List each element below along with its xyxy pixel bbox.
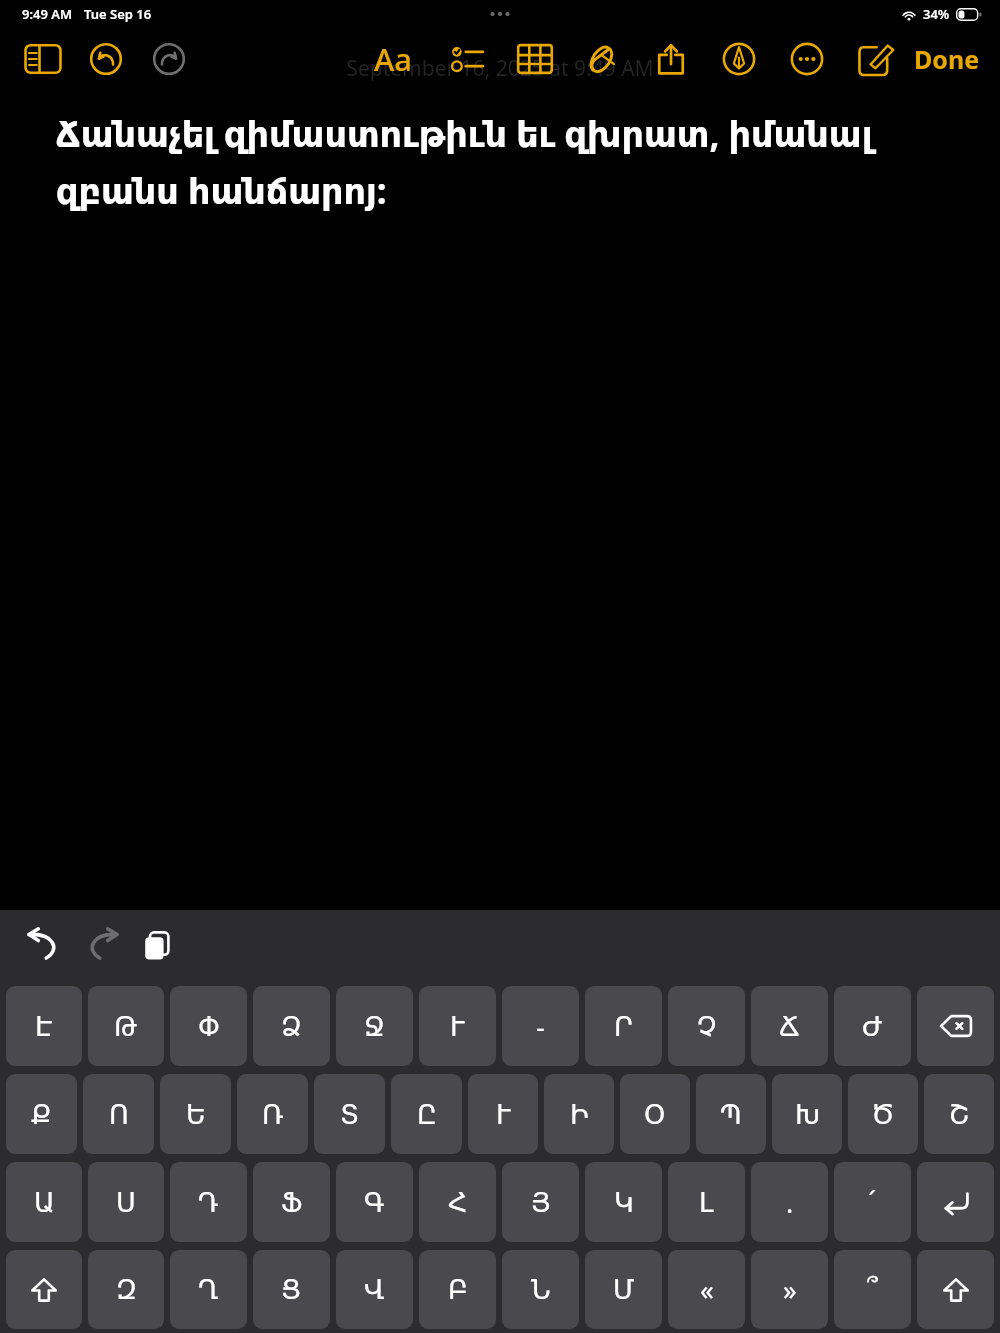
button[interactable]: Դ — [170, 1162, 247, 1242]
staticText: Գ — [364, 1187, 385, 1218]
button[interactable]: Չ — [668, 986, 745, 1066]
button[interactable]: Share — [650, 38, 692, 80]
staticText: 9:49 AM — [22, 5, 73, 23]
staticText: Ս — [116, 1187, 136, 1218]
button[interactable]: Aa — [364, 28, 422, 90]
button[interactable]: Պ — [696, 1074, 766, 1154]
button[interactable]: Ա — [6, 1162, 82, 1242]
button[interactable]: Ի — [544, 1074, 614, 1154]
button[interactable]: Show note list — [24, 40, 62, 78]
staticText: Ո — [109, 1099, 129, 1130]
button[interactable]: Done — [914, 28, 980, 90]
button[interactable]: « — [668, 1250, 745, 1329]
button[interactable]: Undo — [86, 39, 126, 79]
button[interactable]: Յ — [502, 1162, 579, 1242]
button[interactable]: Ռ — [237, 1074, 308, 1154]
button[interactable]: Տ — [314, 1074, 385, 1154]
button[interactable]: Ւ — [468, 1074, 538, 1154]
button[interactable]: Table — [514, 38, 556, 80]
button[interactable]: Հ — [419, 1162, 496, 1242]
staticText: Շ — [949, 1099, 970, 1130]
button[interactable]: Ց — [253, 1250, 330, 1329]
button[interactable]: Ն — [502, 1250, 579, 1329]
staticText: Ճանաչել զիմաստութիւն եւ զխրատ, իմանալ զբ… — [56, 110, 873, 214]
staticText: Ճ — [779, 1011, 800, 1042]
button[interactable]: Է — [6, 986, 82, 1066]
button[interactable]: Ժ — [834, 986, 911, 1066]
button[interactable]: Shift — [917, 1250, 994, 1329]
staticText: Ե — [186, 1099, 206, 1130]
button[interactable]: ՛ — [834, 1162, 911, 1242]
staticText: Ի — [570, 1099, 589, 1130]
staticText: Հ — [448, 1187, 468, 1218]
button[interactable]: More options — [786, 38, 828, 80]
button[interactable]: Ր — [585, 986, 662, 1066]
button[interactable]: Attach — [582, 38, 624, 80]
button[interactable]: New note — [854, 38, 896, 80]
staticText: Օ — [644, 1099, 666, 1130]
button[interactable]: . — [751, 1162, 828, 1242]
button[interactable]: Մ — [585, 1250, 662, 1329]
button[interactable]: - — [502, 986, 579, 1066]
button[interactable]: Undo — [22, 924, 66, 968]
staticText: Մ — [613, 1274, 635, 1305]
staticText: Ն — [531, 1274, 551, 1305]
button[interactable]: Checklist — [446, 38, 488, 80]
button[interactable]: » — [751, 1250, 828, 1329]
staticText: Զ — [116, 1274, 137, 1305]
button[interactable]: Կ — [585, 1162, 662, 1242]
button[interactable]: Ղ — [170, 1250, 247, 1329]
button[interactable]: Զ — [88, 1250, 164, 1329]
staticText: ՛ — [869, 1187, 876, 1218]
staticText: Ֆ — [281, 1187, 303, 1218]
button[interactable]: Ե — [160, 1074, 231, 1154]
staticText: Ժ — [862, 1011, 883, 1042]
staticText: Տ — [340, 1099, 360, 1130]
staticText: Ր — [614, 1011, 633, 1042]
button[interactable]: Redo — [80, 924, 124, 968]
button[interactable]: Redo — [149, 39, 189, 79]
button[interactable]: Ճ — [751, 986, 828, 1066]
button[interactable]: Ս — [88, 1162, 164, 1242]
button[interactable]: Ք — [6, 1074, 77, 1154]
button[interactable]: Backspace — [917, 986, 994, 1066]
staticText: Բ — [448, 1274, 468, 1305]
staticText: Ց — [281, 1274, 302, 1305]
staticText: Ծ — [871, 1099, 895, 1130]
staticText: Խ — [795, 1099, 820, 1130]
staticText: Փ — [198, 1011, 220, 1042]
staticText: Aa — [374, 38, 413, 80]
staticText: Ը — [417, 1099, 437, 1130]
button[interactable]: Շ — [924, 1074, 994, 1154]
button[interactable]: Փ — [170, 986, 247, 1066]
button[interactable]: Խ — [772, 1074, 842, 1154]
staticText: Վ — [364, 1274, 385, 1305]
button[interactable]: Ֆ — [253, 1162, 330, 1242]
button[interactable]: Օ — [620, 1074, 690, 1154]
button[interactable]: Վ — [336, 1250, 413, 1329]
button[interactable]: Ջ — [336, 986, 413, 1066]
staticText: Դ — [198, 1187, 219, 1218]
staticText: Պ — [720, 1099, 742, 1130]
button[interactable]: Markup — [718, 38, 760, 80]
button[interactable]: Լ — [668, 1162, 745, 1242]
button[interactable]: Ձ — [253, 986, 330, 1066]
staticText: . — [786, 1184, 794, 1221]
staticText: Կ — [614, 1187, 634, 1218]
button[interactable]: Թ — [88, 986, 164, 1066]
button[interactable]: Բ — [419, 1250, 496, 1329]
button[interactable]: Ը — [391, 1074, 462, 1154]
staticText: Ա — [34, 1187, 55, 1218]
button[interactable]: Paste — [138, 926, 178, 966]
staticText: Յ — [531, 1187, 551, 1218]
button[interactable]: ՞ — [834, 1250, 911, 1329]
button[interactable]: Ո — [83, 1074, 154, 1154]
staticText: 34% — [923, 5, 950, 23]
staticText: ՞ — [867, 1274, 878, 1305]
button[interactable]: Գ — [336, 1162, 413, 1242]
staticText: Ք — [31, 1099, 52, 1130]
button[interactable]: Ծ — [848, 1074, 918, 1154]
button[interactable]: Shift — [6, 1250, 82, 1329]
button[interactable]: Ւ — [419, 986, 496, 1066]
button[interactable]: Return — [917, 1162, 994, 1242]
